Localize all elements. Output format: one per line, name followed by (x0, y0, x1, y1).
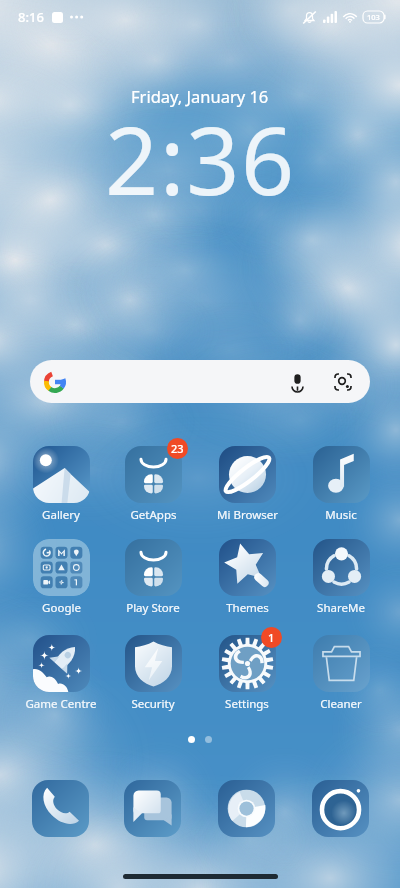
button[interactable]: Play Store (107, 539, 199, 616)
staticText: Play Store (126, 600, 180, 616)
button[interactable]: Themes (201, 539, 293, 616)
staticText: Themes (226, 600, 269, 616)
button[interactable]: ShareMe (295, 539, 387, 616)
button[interactable]: Camera (312, 780, 369, 837)
staticText: Cleaner (320, 696, 362, 712)
button[interactable]: Google Lens (330, 369, 356, 395)
staticText: Game Centre (25, 696, 97, 712)
staticText: 23 (171, 441, 184, 456)
button[interactable]: Search (30, 360, 370, 403)
button[interactable]: Voice search (284, 369, 310, 395)
staticText: 2:36 (105, 96, 296, 223)
staticText: Gallery (42, 507, 80, 523)
staticText: Music (325, 507, 357, 523)
button[interactable]: Gallery (15, 446, 107, 523)
staticText: 1 (268, 630, 275, 645)
staticText: 103 (367, 12, 380, 22)
button[interactable]: Security (107, 635, 199, 712)
button[interactable]: Google (15, 539, 107, 616)
button[interactable]: Mi Browser (201, 446, 293, 523)
staticText: Google (42, 600, 81, 616)
staticText: 8:16 (18, 8, 44, 26)
staticText: Friday, January 16 (131, 85, 269, 107)
button[interactable]: Game Centre (15, 635, 107, 712)
staticText: Settings (225, 696, 269, 712)
button[interactable]: Browser (218, 780, 275, 837)
staticText: Security (131, 696, 175, 712)
button[interactable]: 1 (201, 635, 293, 712)
button[interactable]: Messages (124, 780, 181, 837)
button[interactable]: Music (295, 446, 387, 523)
button[interactable]: Cleaner (295, 635, 387, 712)
staticText: GetApps (130, 507, 177, 523)
button[interactable]: 23 (107, 446, 199, 523)
button[interactable]: Phone (32, 780, 89, 837)
staticText: Mi Browser (217, 507, 278, 523)
staticText: ShareMe (317, 600, 365, 616)
